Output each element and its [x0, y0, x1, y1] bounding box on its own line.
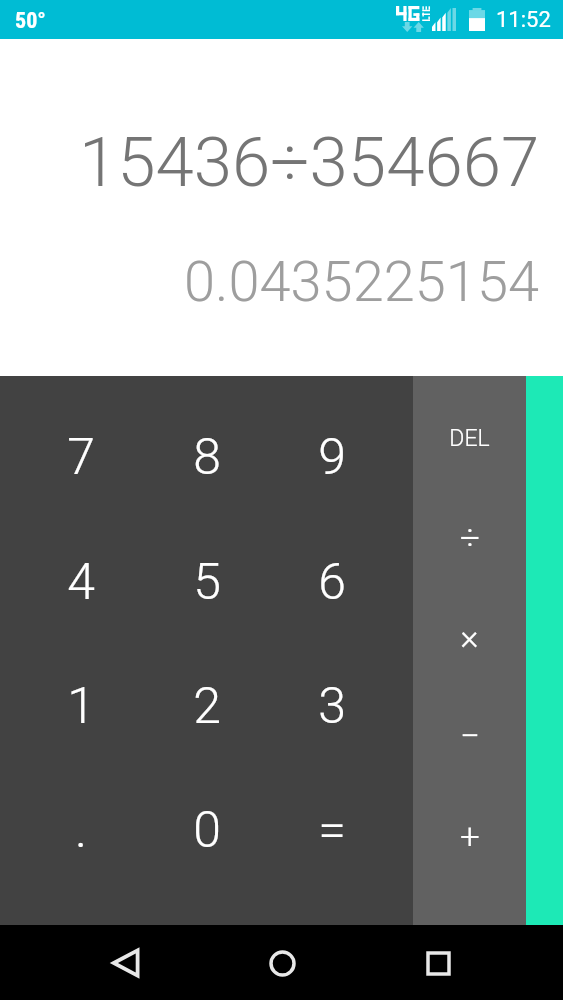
staticText: 2 [193, 677, 221, 736]
staticText: 50° [15, 8, 46, 34]
button[interactable]: Delete [413, 376, 526, 486]
button[interactable]: Eight [138, 376, 276, 513]
staticText: 5 [193, 553, 221, 612]
button[interactable]: Four [0, 513, 138, 650]
other: 4G LTE [396, 6, 430, 21]
staticText: 0.0435225154 [184, 249, 540, 315]
button[interactable]: One [0, 650, 138, 787]
staticText: 1 [67, 677, 95, 736]
other: Battery [469, 8, 485, 31]
button[interactable]: Three [276, 650, 413, 787]
button[interactable]: Home [257, 938, 307, 988]
button[interactable]: Subtract [413, 706, 526, 816]
button[interactable]: Nine [276, 376, 413, 513]
button[interactable]: Zero [138, 787, 276, 924]
button[interactable]: Seven [0, 376, 138, 513]
button[interactable]: Divide [413, 486, 526, 596]
staticText: . [75, 801, 87, 860]
staticText: − [460, 716, 480, 757]
staticText: × [460, 617, 479, 658]
staticText: ÷ [460, 518, 480, 559]
staticText: = [318, 801, 346, 860]
staticText: + [460, 817, 480, 858]
button[interactable]: Back [100, 938, 150, 988]
staticText: 4 [67, 553, 95, 612]
staticText: 6 [318, 553, 346, 612]
staticText: 3 [318, 677, 346, 736]
staticText: 9 [318, 428, 346, 487]
button[interactable]: Equals [276, 787, 413, 924]
button[interactable]: Six [276, 513, 413, 650]
button[interactable]: Two [138, 650, 276, 787]
button[interactable]: Decimal point [0, 787, 138, 924]
staticText: 15436÷354667 [79, 122, 540, 203]
other: Signal strength [432, 8, 456, 31]
staticText: 7 [67, 428, 95, 487]
button[interactable]: Add [413, 816, 526, 925]
staticText: 0 [193, 801, 221, 860]
staticText: 8 [193, 428, 221, 487]
staticText: 11:52 [496, 7, 551, 33]
staticText: DEL [449, 425, 490, 452]
button[interactable]: Multiply [413, 596, 526, 706]
button[interactable]: Five [138, 513, 276, 650]
button[interactable]: Recent apps [413, 938, 463, 988]
